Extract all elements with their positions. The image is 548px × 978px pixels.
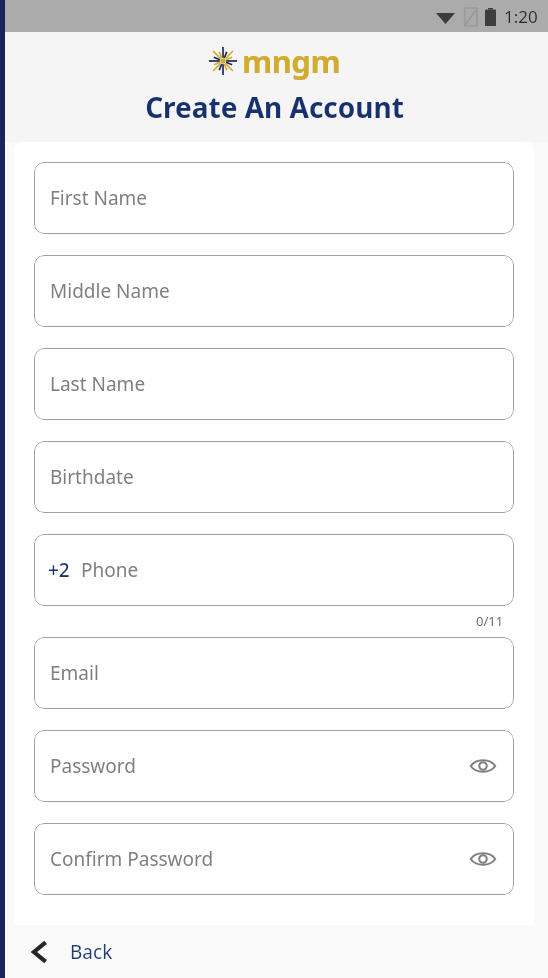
staticText: Back — [70, 939, 113, 965]
button[interactable]: Middle Name — [34, 255, 514, 327]
staticText: Phone — [81, 557, 139, 583]
button[interactable]: Show password — [466, 842, 500, 876]
staticText: Birthdate — [50, 464, 500, 490]
button[interactable]: Back — [22, 933, 123, 971]
staticText: Last Name — [50, 371, 500, 397]
button[interactable]: Email — [34, 637, 514, 709]
button[interactable]: Confirm Password — [34, 823, 514, 895]
button[interactable]: Last Name — [34, 348, 514, 420]
staticText: Email — [50, 660, 500, 686]
button[interactable]: Show password — [466, 749, 500, 783]
button[interactable]: Birthdate — [34, 441, 514, 513]
staticText: mngm — [242, 40, 341, 82]
staticText: +2 — [48, 557, 70, 583]
staticText: 1:20 — [504, 5, 538, 28]
staticText: Middle Name — [50, 278, 500, 304]
button[interactable]: First Name — [34, 162, 514, 234]
button[interactable]: Password — [34, 730, 514, 802]
staticText: 0/11 — [476, 612, 504, 630]
staticText: Confirm Password — [50, 846, 466, 872]
staticText: Create An Account — [145, 88, 404, 126]
button[interactable]: +2 — [34, 534, 514, 606]
staticText: Password — [50, 753, 466, 779]
staticText: First Name — [50, 185, 500, 211]
